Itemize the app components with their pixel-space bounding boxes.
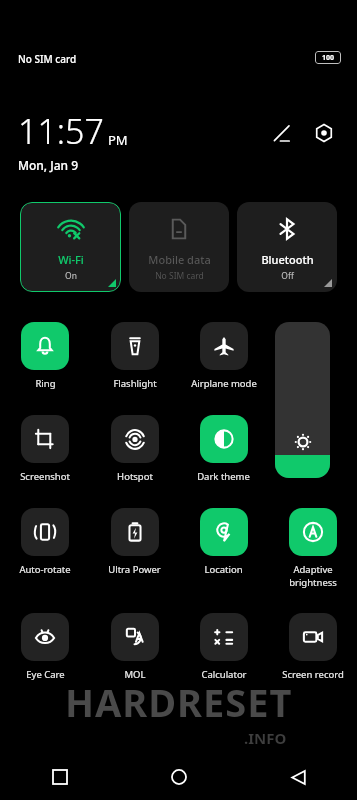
staticText: HARDRESET (65, 676, 293, 728)
button[interactable]: Location (179, 504, 268, 609)
button[interactable]: Bluetooth (237, 202, 337, 292)
staticText: On (65, 270, 77, 282)
button[interactable]: Settings (307, 116, 341, 150)
button[interactable]: Adaptive (268, 504, 357, 609)
staticText: No SIM card (155, 270, 204, 282)
button[interactable]: Calculator (179, 609, 268, 702)
button[interactable]: Mobile data (129, 202, 229, 292)
button[interactable]: Eye Care (0, 609, 90, 702)
staticText: Calculator (201, 668, 247, 681)
button[interactable]: Dark theme (179, 411, 268, 504)
button[interactable]: Screen record (268, 609, 357, 702)
staticText: Mon, Jan 9 (18, 157, 79, 173)
button[interactable]: Airplane mode (179, 318, 268, 411)
staticText: Screenshot (20, 470, 70, 483)
button[interactable]: Hotspot (90, 411, 179, 504)
staticText: Dark theme (197, 470, 250, 483)
staticText: Location (204, 563, 243, 576)
staticText: Hotspot (117, 470, 153, 483)
staticText: Mobile data (148, 252, 211, 267)
staticText: MOL (124, 668, 146, 681)
button[interactable]: Ring (0, 318, 90, 411)
button[interactable]: Auto-rotate (0, 504, 90, 609)
button[interactable]: Brightness (275, 322, 330, 478)
button[interactable]: Home (157, 755, 201, 799)
staticText: Eye Care (26, 668, 65, 681)
staticText: Flashlight (113, 377, 157, 390)
staticText: brightness (289, 576, 337, 589)
button[interactable]: Ultra Power (90, 504, 179, 609)
staticText: 11:57 (18, 108, 104, 154)
button[interactable]: MOL (90, 609, 179, 702)
staticText: .INFO (244, 728, 287, 748)
button[interactable]: Screenshot (0, 411, 90, 504)
button[interactable]: Recent apps (38, 755, 82, 799)
staticText: Adaptive (293, 563, 333, 576)
button[interactable]: Wi-Fi (20, 202, 121, 292)
staticText: Ultra Power (108, 563, 161, 576)
staticText: PM (108, 131, 128, 149)
staticText: Screen record (282, 668, 344, 681)
staticText: Wi-Fi (58, 252, 84, 267)
button[interactable]: Back (276, 755, 320, 799)
staticText: Airplane mode (191, 377, 257, 390)
staticText: Auto-rotate (19, 563, 71, 576)
staticText: Ring (35, 377, 56, 390)
staticText: Bluetooth (261, 252, 314, 267)
staticText: Off (281, 270, 294, 282)
staticText: 100 (322, 53, 335, 63)
button[interactable]: Flashlight (90, 318, 179, 411)
button[interactable]: Edit (265, 116, 299, 150)
staticText: No SIM card (18, 52, 77, 66)
